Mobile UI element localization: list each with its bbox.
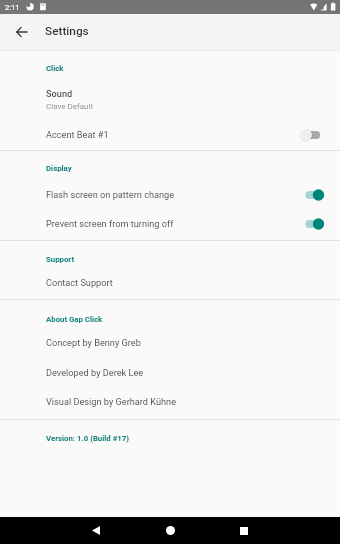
staticText: Developed by Derek Lee xyxy=(46,367,144,378)
staticText: Sound xyxy=(46,88,73,99)
staticText: Click xyxy=(46,64,64,73)
staticText: Concept by Benny Greb xyxy=(46,337,141,348)
staticText: Display xyxy=(46,164,72,173)
button[interactable]: Back xyxy=(8,19,34,45)
button[interactable]: Prevent screen from turning off xyxy=(0,210,340,240)
staticText: Version: 1.0 (Build #17) xyxy=(46,434,130,443)
staticText: Visual Design by Gerhard Kühne xyxy=(46,396,177,407)
staticText: 2:11 xyxy=(5,3,20,12)
button[interactable]: Developed by Derek Lee xyxy=(0,358,340,388)
staticText: Accent Beat #1 xyxy=(46,129,109,140)
button[interactable]: Back xyxy=(73,517,119,544)
staticText: Clave Default xyxy=(46,102,94,111)
button[interactable]: Concept by Benny Greb xyxy=(0,330,340,358)
button[interactable]: Accent Beat #1 xyxy=(0,120,340,150)
staticText: Contact Support xyxy=(46,277,113,288)
button[interactable]: Recents xyxy=(221,517,267,544)
button[interactable]: Home xyxy=(147,517,193,544)
button[interactable]: Visual Design by Gerhard Kühne xyxy=(0,388,340,417)
button[interactable]: Sound xyxy=(0,86,340,120)
staticText: About Gap Click xyxy=(46,315,103,324)
staticText: Flash screen on pattern change xyxy=(46,189,175,200)
button[interactable]: Contact Support xyxy=(0,270,340,299)
button[interactable]: Flash screen on pattern change xyxy=(0,180,340,210)
staticText: Support xyxy=(46,255,75,264)
staticText: Settings xyxy=(45,24,89,38)
staticText: Prevent screen from turning off xyxy=(46,218,174,229)
